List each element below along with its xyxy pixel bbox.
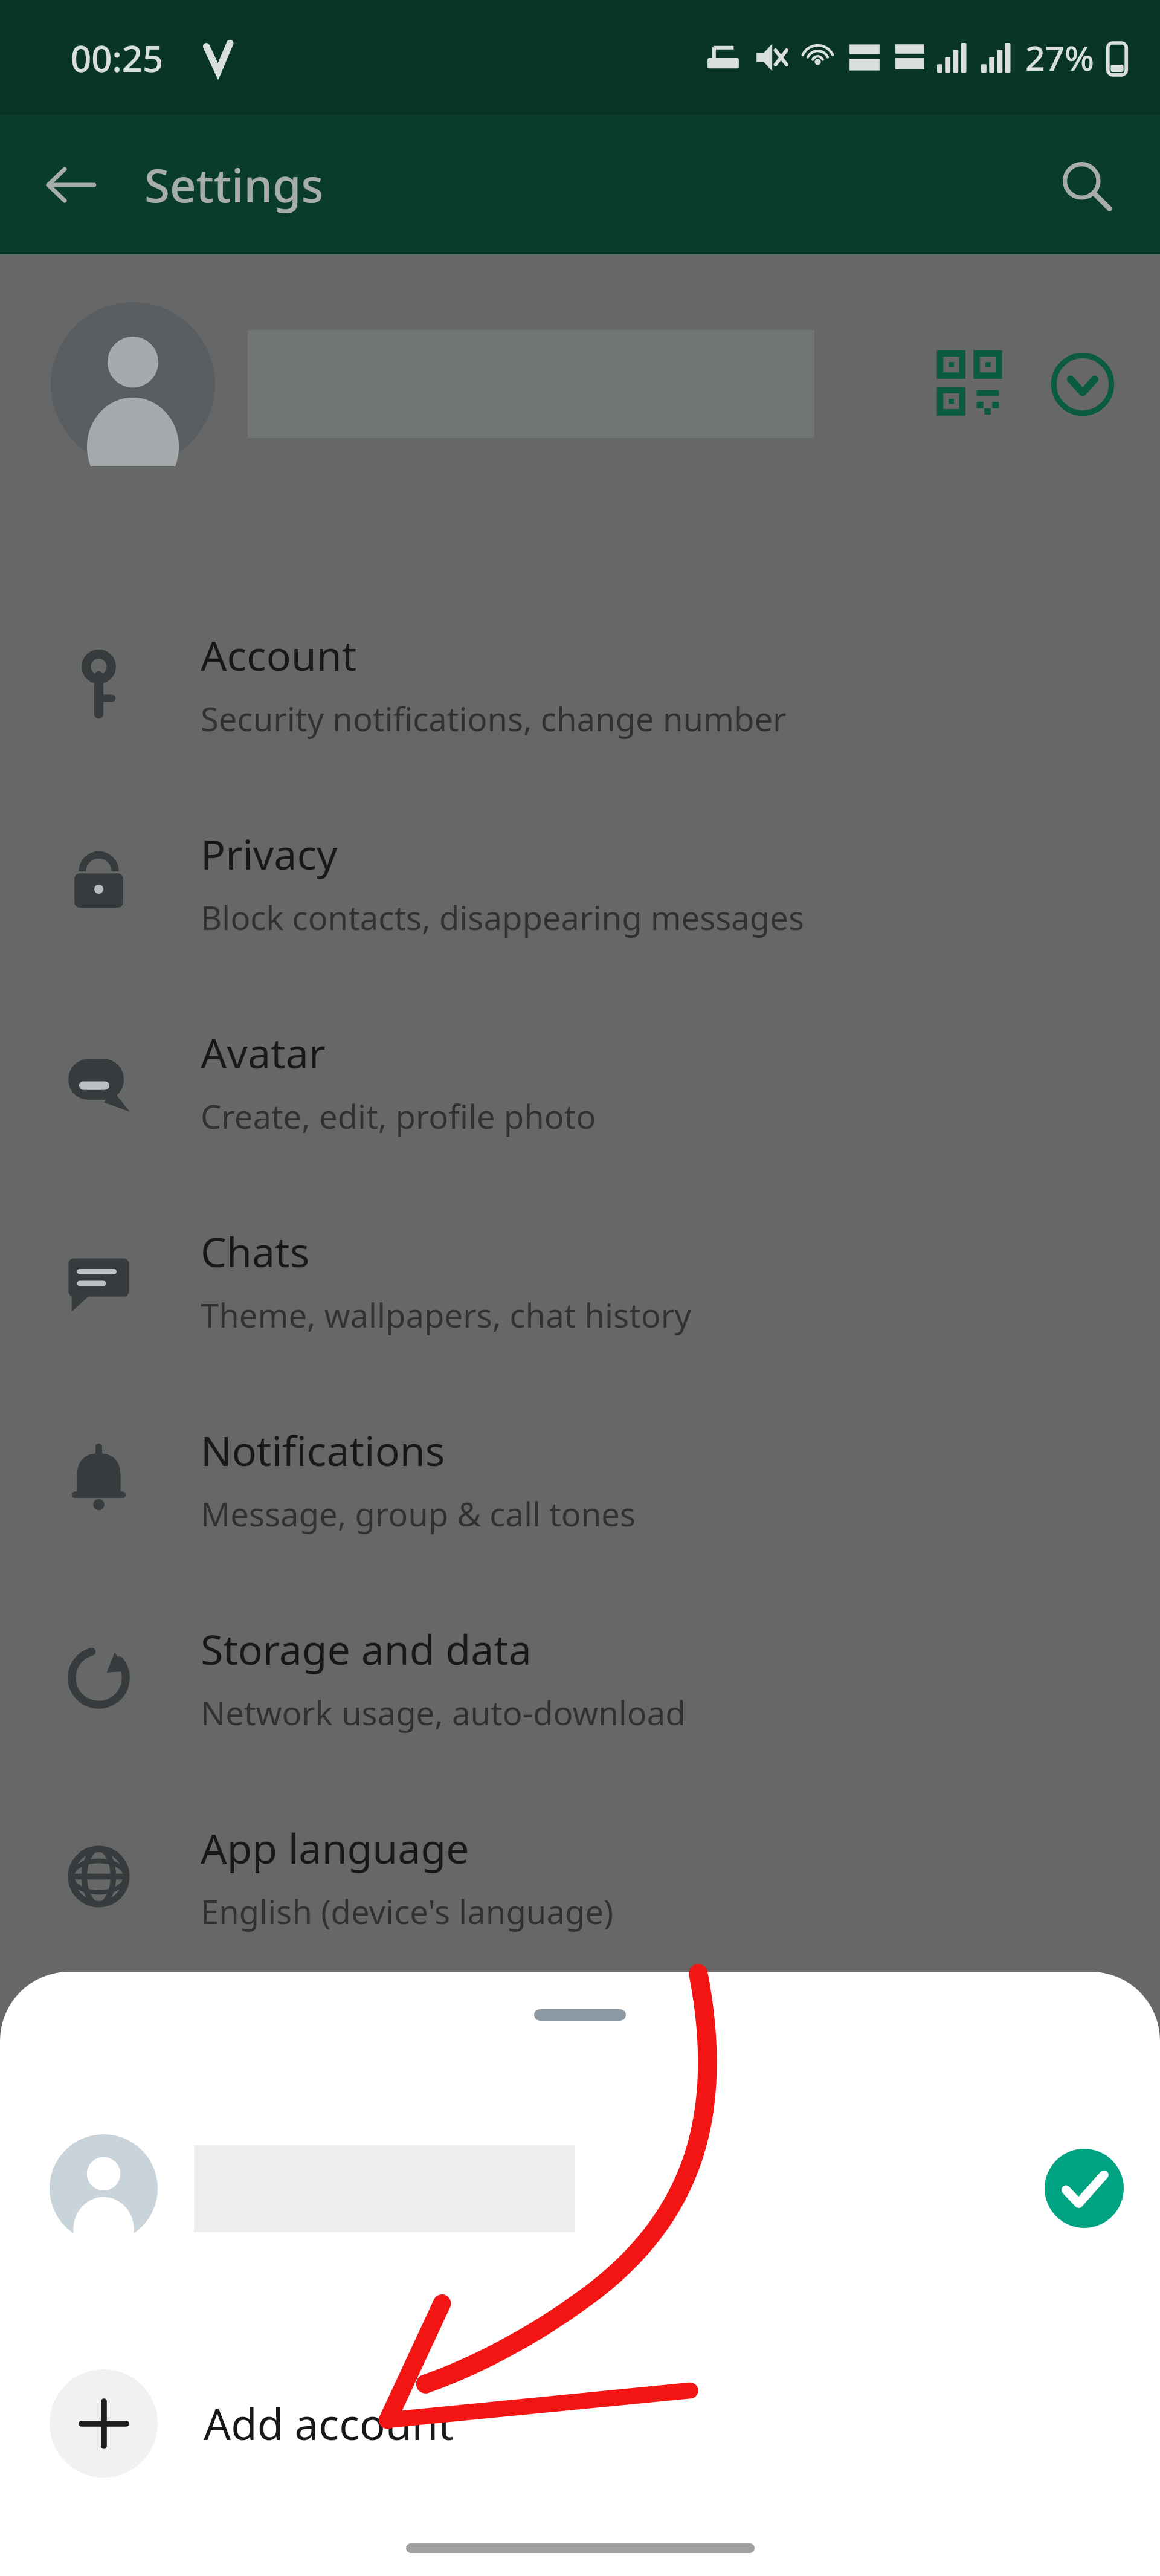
button[interactable]: Storage and data <box>0 1578 1160 1777</box>
staticText: App language <box>201 1819 469 1876</box>
staticText: Chats <box>201 1223 310 1279</box>
staticText: Network usage, auto-download <box>201 1690 686 1735</box>
staticText: Notifications <box>201 1422 445 1478</box>
button[interactable]: Expand profile <box>1031 333 1133 435</box>
button[interactable]: App language <box>0 1777 1160 1976</box>
button[interactable]: Search <box>1038 137 1133 233</box>
staticText: Create, edit, profile photo <box>201 1094 596 1138</box>
staticText: English (device's language) <box>201 1889 614 1934</box>
staticText: Settings <box>144 153 324 216</box>
staticText: Security notifications, change number <box>201 696 787 741</box>
button[interactable]: Chats <box>0 1181 1160 1380</box>
staticText: Theme, wallpapers, chat history <box>201 1293 691 1337</box>
button[interactable]: Avatar <box>0 982 1160 1181</box>
staticText: Account <box>201 627 357 683</box>
staticText: Privacy <box>201 825 338 882</box>
button[interactable]: Back <box>23 137 118 233</box>
button[interactable]: QR code <box>920 333 1022 435</box>
button[interactable]: Add account <box>0 2341 1160 2505</box>
button[interactable]: Account <box>0 584 1160 783</box>
staticText: Message, group & call tones <box>201 1491 636 1536</box>
staticText: 00:25 <box>71 33 164 82</box>
button[interactable]: Notifications <box>0 1380 1160 1578</box>
button[interactable]: QR code <box>0 277 1160 491</box>
button[interactable]: Privacy <box>0 783 1160 982</box>
button[interactable]: Help <box>0 1976 1160 2175</box>
button[interactable] <box>0 2098 1160 2279</box>
staticText: Add account <box>204 2394 454 2452</box>
staticText: 27% <box>1025 34 1094 81</box>
staticText: Storage and data <box>201 1621 532 1677</box>
staticText: Block contacts, disappearing messages <box>201 895 805 940</box>
staticText: Avatar <box>201 1024 326 1080</box>
